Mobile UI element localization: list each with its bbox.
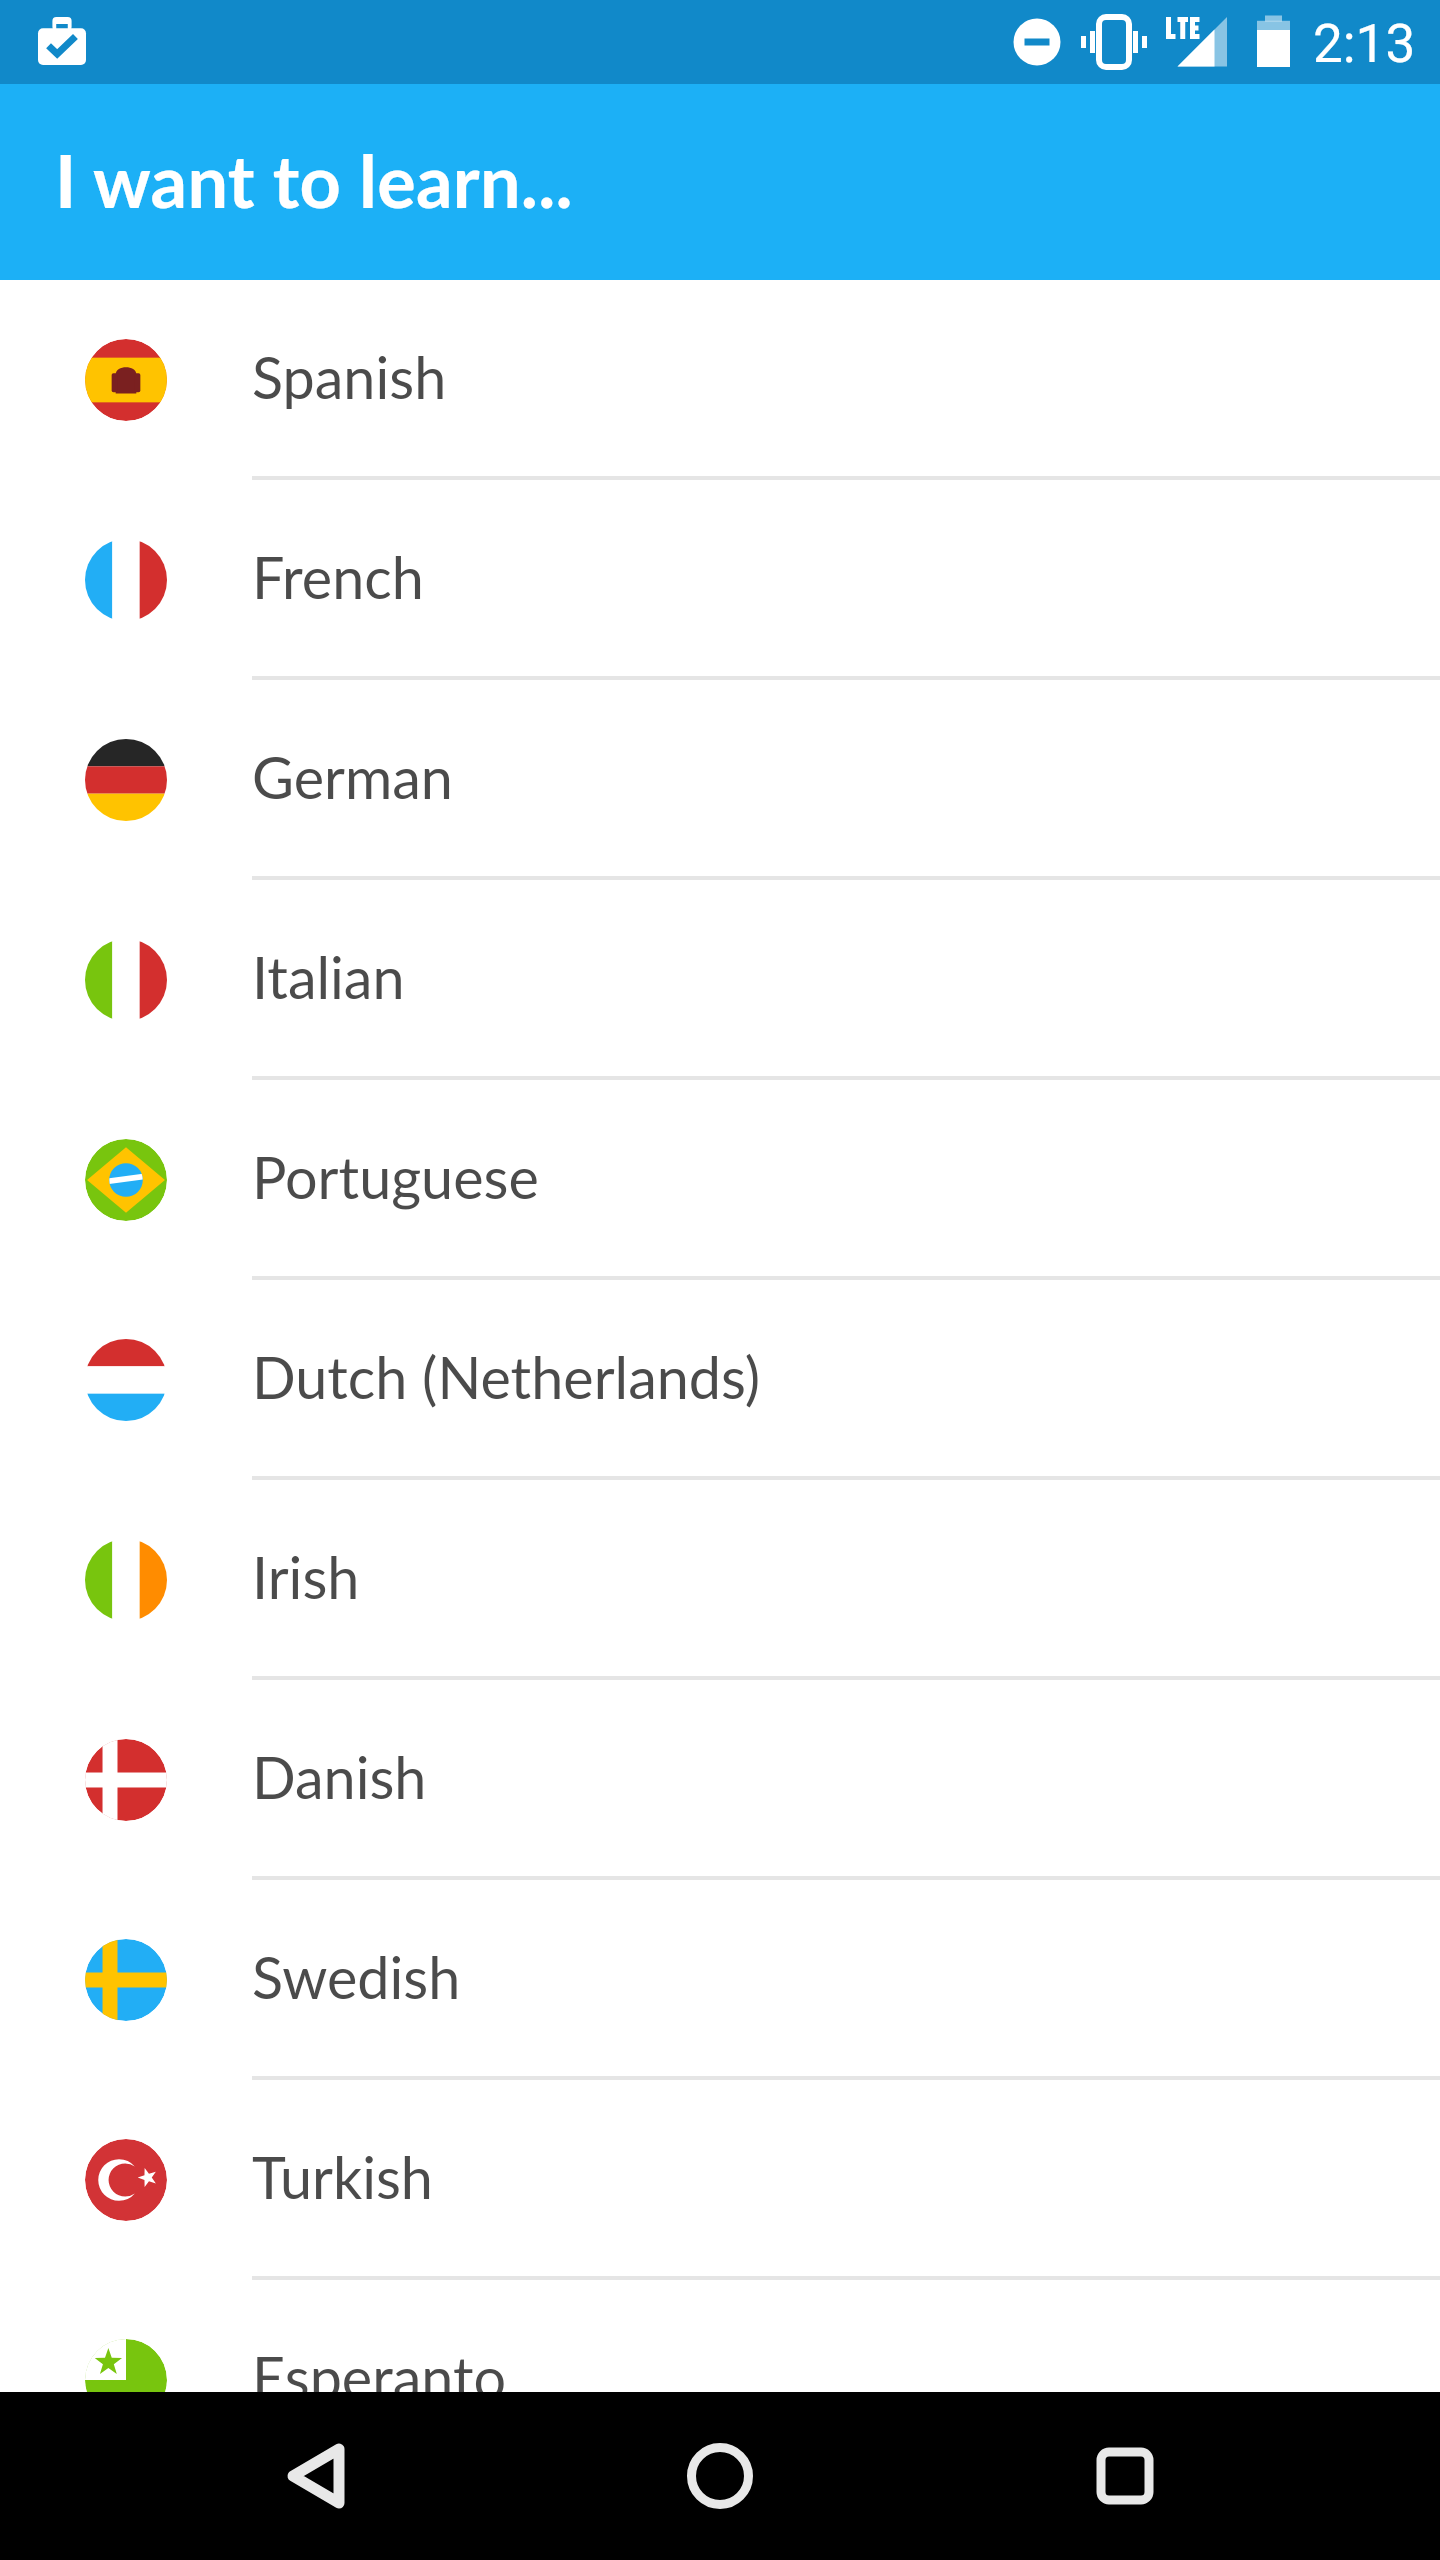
- staticText: French: [252, 542, 424, 611]
- staticText: Danish: [252, 1742, 427, 1811]
- staticText: Esperanto: [252, 2342, 507, 2392]
- staticText: Irish: [252, 1542, 360, 1611]
- staticText: Swedish: [252, 1942, 461, 2011]
- staticText: German: [252, 742, 453, 811]
- button[interactable]: Dutch (Netherlands): [0, 1280, 1440, 1480]
- button[interactable]: Esperanto: [0, 2280, 1440, 2392]
- staticText: Turkish: [252, 2142, 433, 2211]
- staticText: Italian: [252, 942, 405, 1011]
- button[interactable]: Italian: [0, 880, 1440, 1080]
- staticText: Dutch (Netherlands): [252, 1342, 760, 1411]
- button[interactable]: French: [0, 480, 1440, 680]
- button[interactable]: Recent apps: [1065, 2416, 1185, 2536]
- staticText: 2:13: [1313, 13, 1416, 75]
- button[interactable]: Portuguese: [0, 1080, 1440, 1280]
- button[interactable]: German: [0, 680, 1440, 880]
- button[interactable]: Turkish: [0, 2080, 1440, 2280]
- button[interactable]: Back: [256, 2416, 376, 2536]
- button[interactable]: Irish: [0, 1480, 1440, 1680]
- button[interactable]: Home: [660, 2416, 780, 2536]
- button[interactable]: Danish: [0, 1680, 1440, 1880]
- button[interactable]: Swedish: [0, 1880, 1440, 2080]
- staticText: Spanish: [252, 342, 447, 411]
- staticText: I want to learn...: [55, 137, 574, 223]
- button[interactable]: Spanish: [0, 280, 1440, 480]
- staticText: Portuguese: [252, 1142, 539, 1211]
